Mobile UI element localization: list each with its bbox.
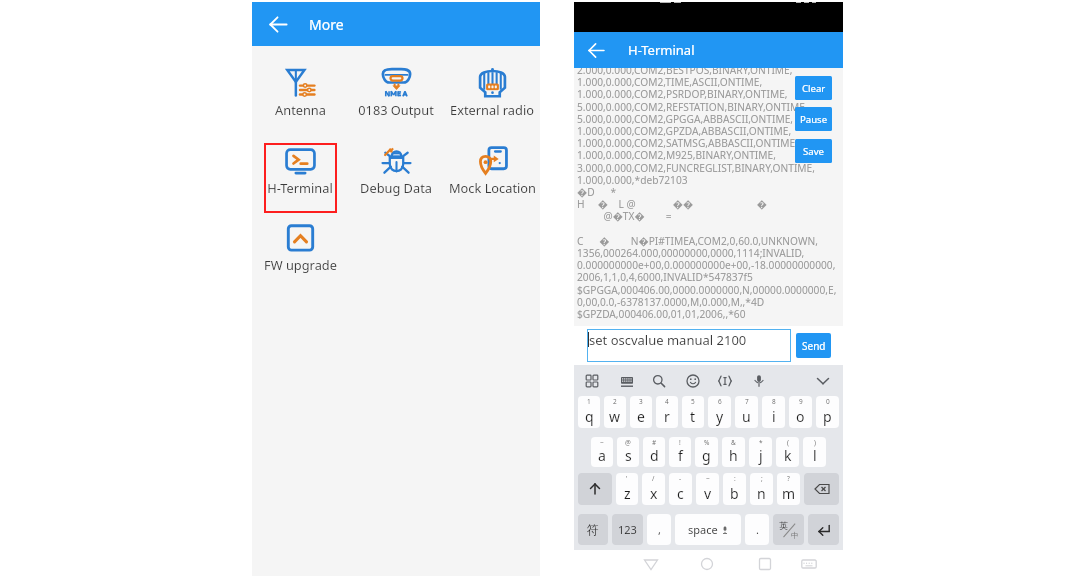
button[interactable]: Antenna [252,66,348,134]
button[interactable]: Backspace [804,473,839,505]
button[interactable]: 6 [708,396,731,428]
button[interactable]: Back [574,32,618,68]
staticText: ! [679,438,681,447]
staticText: 1.000,0.000,*deb72103 [577,173,688,187]
button[interactable]: 1 [578,396,600,428]
button[interactable]: Emoji [683,371,703,391]
button[interactable]: 3 [630,396,652,428]
button[interactable]: External radio [444,66,540,134]
button[interactable]: Space [675,514,741,545]
button[interactable]: Pause [795,107,832,131]
button[interactable]: 0 [816,396,839,428]
button[interactable]: Send [796,333,831,358]
button[interactable]: 8 [762,396,785,428]
staticText: Pause [800,113,828,126]
button[interactable]: * [749,437,772,467]
staticText: ~ [600,438,604,447]
staticText: 1.000,0.000,COM2,SATMSG,ABBASCII,ONTIME, [577,136,798,150]
button[interactable]: Clear [795,76,832,100]
staticText: / [652,474,655,483]
button[interactable]: & [722,437,745,467]
button[interactable]: : [723,473,746,505]
staticText: * [759,438,763,447]
button[interactable]: 2 [604,396,626,428]
staticText: �D * [577,185,617,199]
button[interactable]: Keyboard layout [617,371,637,391]
staticText: i [772,407,776,426]
button[interactable]: Enter [808,514,839,545]
button[interactable]: 符 [578,514,608,545]
staticText: . [756,522,759,537]
staticText: s [625,446,632,465]
staticText: 中 [791,531,799,540]
button[interactable]: Back [252,2,304,46]
button[interactable]: Search [649,371,669,391]
button[interactable]: Shift [578,473,612,505]
staticText: 3.000,0.000,COM2,FUNCREGLIST,BINARY,ONTI… [577,161,816,175]
staticText: e [637,407,645,426]
button[interactable]: Text tools [715,371,735,391]
button[interactable]: Apps [582,371,602,391]
button[interactable]: @ [617,437,639,467]
button[interactable]: ) [803,437,826,467]
staticText: : [734,474,736,483]
staticText: g [702,446,711,465]
staticText: u [742,407,751,426]
button[interactable]: 4 [656,396,678,428]
button[interactable]: - [669,473,692,505]
button[interactable]: H-Terminal [252,144,348,212]
button[interactable]: Save [795,139,832,163]
button[interactable]: 0183 Output [348,66,444,134]
button[interactable]: Voice input [749,371,769,391]
staticText: a [598,446,606,465]
staticText: More [309,15,344,34]
staticText: ' [626,474,628,483]
staticText: p [823,407,832,426]
staticText: Antenna [275,101,326,118]
staticText: r [664,407,670,426]
button[interactable]: Language [773,514,804,545]
button[interactable]: Debug Data [348,144,444,212]
button[interactable]: Mock Location [444,144,540,212]
button[interactable]: Recents [754,553,776,575]
button[interactable]: ' [616,473,638,505]
staticText: @�TX� = [577,209,672,223]
button[interactable]: # [643,437,665,467]
staticText: ? [787,474,790,483]
button[interactable]: set oscvalue manual 2100 [587,329,791,362]
button[interactable]: ? [777,473,800,505]
button[interactable]: Back [640,553,662,575]
staticText: y [716,407,724,426]
button[interactable]: FW upgrade [252,221,348,289]
button[interactable]: ( [776,437,799,467]
staticText: n [757,484,766,503]
button[interactable]: ~ [696,473,719,505]
staticText: , [658,522,661,537]
staticText: $GPGGA,000406.00,0000.0000000,N,00000.00… [577,283,837,297]
button[interactable]: 7 [735,396,758,428]
button[interactable]: 9 [789,396,812,428]
staticText: # [652,438,657,447]
button[interactable]: Home [696,553,718,575]
button[interactable]: 5 [682,396,704,428]
staticText: 1.000,0.000,COM2,TIME,ASCII,ONTIME, [577,75,763,89]
button[interactable]: % [695,437,718,467]
staticText: space [688,522,718,537]
button[interactable]: 123 [612,514,643,545]
staticText: 5.000,0.000,COM2,GPGGA,ABBASCII,ONTIME, [577,112,794,126]
button[interactable]: . [745,514,769,545]
button[interactable]: ; [750,473,773,505]
staticText: 9 [799,397,803,406]
button[interactable]: ~ [591,437,613,467]
button[interactable]: Hide keyboard [813,371,833,391]
button[interactable]: Keyboard [798,553,820,575]
button[interactable]: ! [669,437,691,467]
staticText: External radio [450,101,534,118]
staticText: 1356,000264.000,00000000,0000,1114;INVAL… [577,246,805,260]
staticText: l [813,446,817,465]
staticText: 8 [772,397,776,406]
staticText: Mock Location [449,179,536,196]
staticText: H-Terminal [267,179,333,196]
button[interactable]: , [647,514,671,545]
button[interactable]: / [642,473,665,505]
